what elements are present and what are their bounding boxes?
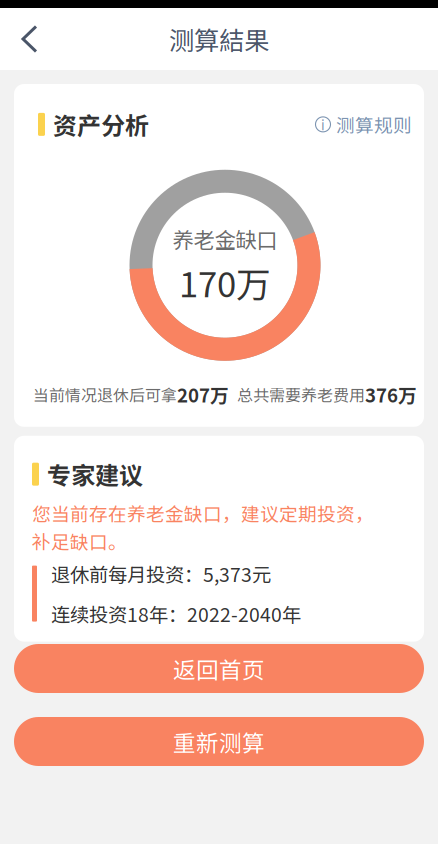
staticText: 总共需要养老费用	[237, 383, 365, 406]
staticText: 376万	[365, 381, 417, 408]
staticText: 测算规则	[336, 111, 412, 138]
staticText: 您当前存在养老金缺口，建议定期投资，补足缺口。	[32, 499, 374, 555]
button[interactable]: 返回	[0, 12, 53, 66]
staticText: 返回首页	[173, 652, 265, 685]
staticText: 连续投资18年：2022-2040年	[51, 600, 301, 628]
staticText: i	[321, 115, 325, 134]
staticText: 资产分析	[53, 107, 149, 142]
button[interactable]: i	[315, 111, 412, 138]
staticText: 测算結果	[169, 21, 269, 57]
staticText: 退休前每月投资：5,373元	[51, 560, 271, 588]
button[interactable]: 返回首页	[14, 644, 424, 693]
staticText: 重新测算	[173, 725, 265, 758]
staticText: 专家建议	[47, 457, 143, 492]
staticText: 当前情况退休后可拿	[33, 383, 177, 406]
staticText: 养老金缺口	[172, 223, 277, 254]
staticText: 170万	[179, 257, 271, 307]
staticText: 207万	[177, 381, 229, 408]
button[interactable]: 重新测算	[14, 717, 424, 766]
